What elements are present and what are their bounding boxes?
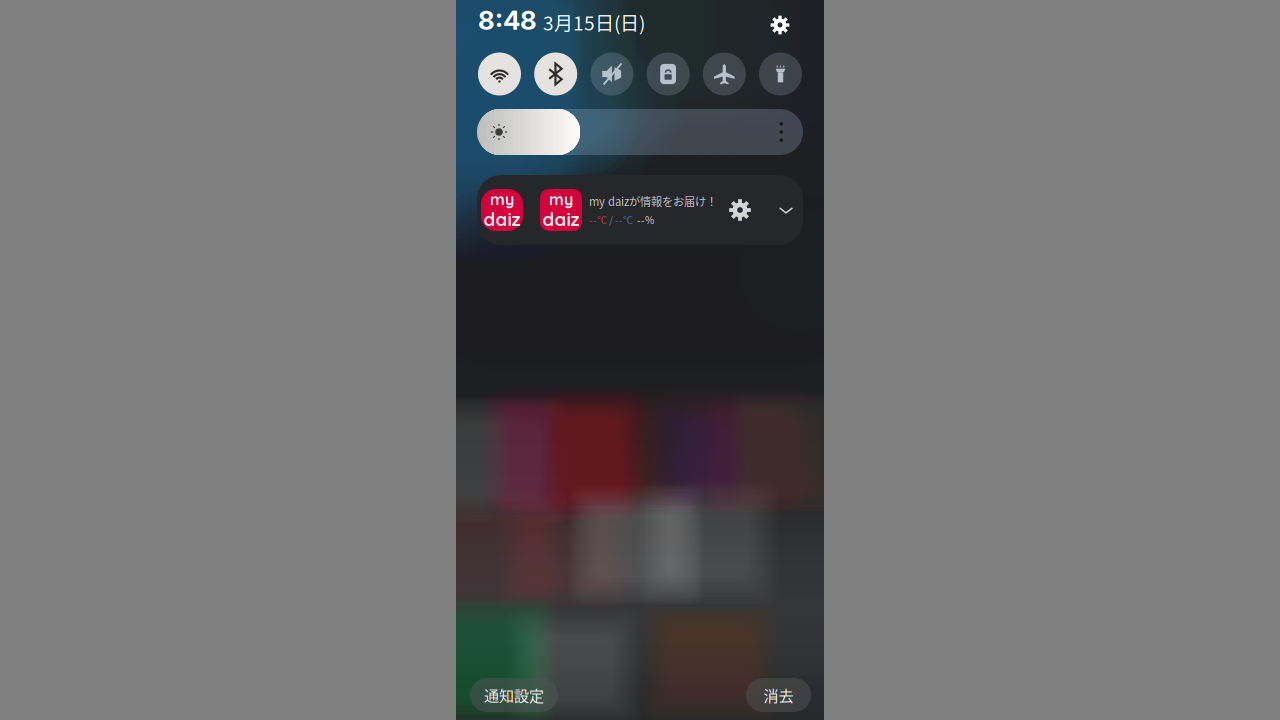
- staticText: 通知設定: [484, 684, 544, 706]
- staticText: daiz: [483, 207, 520, 231]
- button[interactable]: 画面の明るさ: [477, 109, 803, 155]
- staticText: /: [607, 212, 615, 227]
- button[interactable]: ライト: [759, 52, 802, 95]
- staticText: 3月15日(日): [543, 8, 645, 36]
- button[interactable]: 消去: [746, 678, 811, 712]
- button[interactable]: Wi-Fi: [478, 52, 521, 95]
- button[interactable]: 設定: [767, 12, 793, 38]
- staticText: daiz: [542, 207, 579, 231]
- button[interactable]: 機内モード: [703, 52, 746, 95]
- staticText: 消去: [763, 684, 793, 706]
- staticText: --℃: [615, 212, 633, 227]
- button[interactable]: Bluetooth: [534, 52, 577, 95]
- button[interactable]: マナーモード: [590, 52, 633, 95]
- staticText: my: [549, 189, 573, 209]
- button[interactable]: my daizが情報をお届け！: [477, 175, 803, 245]
- staticText: my: [490, 189, 514, 209]
- staticText: --%: [633, 212, 654, 227]
- staticText: --℃: [589, 212, 607, 227]
- button[interactable]: 通知設定: [470, 678, 558, 712]
- staticText: my daizが情報をお届け！: [589, 193, 717, 209]
- button[interactable]: 画面ロック: [647, 52, 690, 95]
- staticText: 8:48: [478, 4, 537, 36]
